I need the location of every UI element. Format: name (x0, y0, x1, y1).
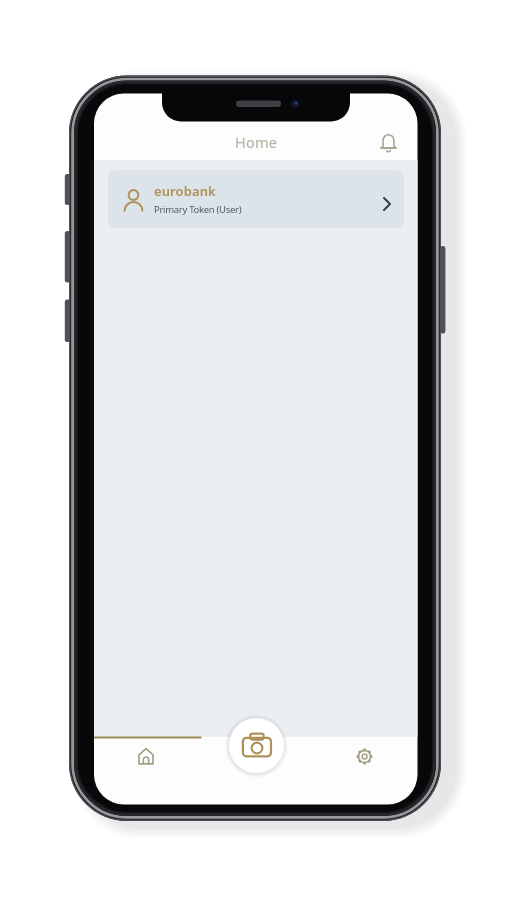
staticText: Primary Token (User) (154, 203, 242, 216)
button[interactable] (126, 740, 166, 776)
button[interactable] (376, 128, 402, 156)
button[interactable] (344, 740, 384, 776)
button[interactable]: eurobank (108, 170, 404, 228)
staticText: Home (235, 132, 278, 152)
staticText: eurobank (154, 182, 216, 200)
button[interactable] (229, 718, 284, 773)
